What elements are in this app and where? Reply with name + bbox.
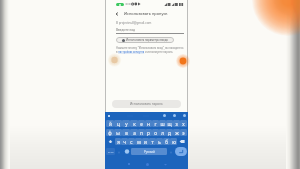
staticText: э	[182, 130, 185, 136]
button[interactable]: ю	[170, 138, 177, 145]
staticText: о	[154, 130, 157, 136]
button[interactable]: т	[149, 138, 156, 145]
button[interactable]: Home	[138, 160, 156, 168]
staticText: ф	[108, 130, 112, 136]
staticText: я	[117, 139, 120, 145]
staticText: н	[147, 121, 150, 127]
button[interactable]: а	[130, 129, 138, 136]
staticText: ю	[172, 139, 176, 145]
button[interactable]: с	[128, 138, 135, 145]
button[interactable]: ж	[173, 129, 180, 136]
staticText: р	[147, 130, 150, 136]
staticText: и	[144, 139, 147, 145]
staticText: Использовать пароль	[130, 102, 163, 106]
button[interactable]: з	[173, 120, 180, 127]
staticText: т	[151, 139, 154, 145]
staticText: Использовать параметры входа	[126, 38, 168, 42]
staticText: п	[140, 130, 143, 136]
staticText: ы	[116, 130, 120, 136]
staticText: з	[175, 121, 178, 127]
button[interactable]: й	[106, 120, 114, 127]
button[interactable]: ь	[156, 138, 163, 145]
button[interactable]: щ	[166, 120, 173, 127]
button[interactable]: Clipboard	[106, 113, 111, 118]
button[interactable]: л	[159, 129, 166, 136]
button[interactable]: ы	[114, 129, 122, 136]
staticText: В projectnull@gmail.com	[116, 21, 152, 25]
button[interactable]: г	[152, 120, 159, 127]
staticText: ж	[175, 130, 179, 136]
staticText: в	[125, 130, 128, 136]
button[interactable]: Keyboard tool	[182, 113, 187, 118]
button[interactable]: п	[138, 129, 145, 136]
staticText: м	[137, 139, 141, 145]
staticText: г	[154, 121, 157, 127]
staticText: й	[109, 121, 112, 127]
button[interactable]: я	[115, 138, 121, 145]
staticText: Использовать пропуск	[124, 11, 168, 16]
staticText: а	[133, 130, 136, 136]
button[interactable]: ч	[121, 138, 128, 145]
button[interactable]: е	[138, 120, 145, 127]
staticText: ш	[160, 121, 165, 127]
button[interactable]: к	[130, 120, 138, 127]
button[interactable]: ?123	[106, 148, 115, 155]
button[interactable]: Русский	[131, 148, 167, 155]
button[interactable]: Enter	[175, 147, 187, 156]
button[interactable]: р	[145, 129, 152, 136]
button[interactable]: Keyboard tool	[172, 113, 177, 118]
staticText: л	[161, 130, 164, 136]
button[interactable]: э	[180, 129, 187, 136]
button[interactable]: Back	[156, 160, 174, 168]
button[interactable]: Emoji	[123, 147, 131, 156]
staticText: ч	[123, 139, 126, 145]
staticText: Нажмите кнопку "Использовать вход", вы н…	[116, 46, 184, 54]
button[interactable]: Back	[113, 10, 120, 17]
button[interactable]: Backspace	[177, 138, 187, 145]
button[interactable]: ш	[159, 120, 166, 127]
staticText: щ	[167, 121, 172, 127]
staticText: к	[133, 121, 136, 127]
staticText: д	[168, 130, 171, 136]
button[interactable]: в	[122, 129, 130, 136]
button[interactable]: Period	[167, 147, 175, 156]
button[interactable]: б	[163, 138, 170, 145]
staticText: Русский	[144, 150, 155, 154]
button[interactable]: у	[122, 120, 130, 127]
staticText: ц	[117, 121, 120, 127]
button[interactable]: Keyboard tool	[162, 113, 167, 118]
button[interactable]: о	[152, 129, 159, 136]
button[interactable]: ц	[114, 120, 122, 127]
staticText: ?123	[108, 150, 114, 153]
button[interactable]: н	[145, 120, 152, 127]
staticText: х	[182, 121, 185, 127]
button[interactable]: м	[135, 138, 142, 145]
button[interactable]: ф	[106, 129, 114, 136]
staticText: ь	[158, 139, 161, 145]
button[interactable]: Использовать пароль	[112, 100, 181, 108]
button[interactable]: х	[180, 120, 187, 127]
staticText: с	[130, 139, 133, 145]
staticText: Введите код	[116, 28, 135, 32]
button[interactable]: Shift	[106, 138, 115, 145]
button[interactable]: Recents	[120, 160, 138, 168]
staticText: е	[140, 121, 143, 127]
staticText: у	[125, 121, 128, 127]
button[interactable]: и	[142, 138, 149, 145]
button[interactable]: Comma	[115, 147, 123, 156]
staticText: б	[165, 139, 168, 145]
button[interactable]: д	[166, 129, 173, 136]
button[interactable]: Использовать параметры входа	[116, 37, 174, 43]
